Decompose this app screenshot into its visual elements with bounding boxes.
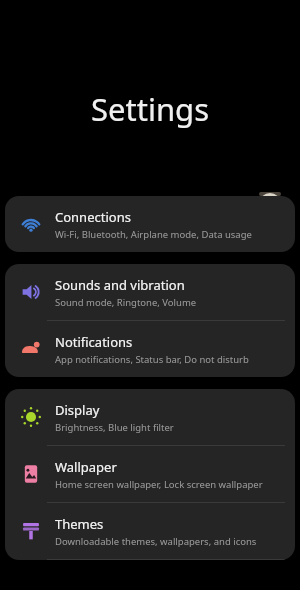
button[interactable]: Notifications bbox=[5, 321, 295, 377]
staticText: Wallpaper bbox=[55, 458, 117, 476]
staticText: Settings bbox=[91, 88, 209, 130]
staticText: Connections bbox=[55, 208, 131, 226]
staticText: Notifications bbox=[55, 333, 133, 351]
button[interactable]: Display bbox=[5, 389, 295, 445]
button[interactable]: Sounds and vibration bbox=[5, 264, 295, 320]
staticText: Display bbox=[55, 401, 100, 419]
button[interactable]: Themes bbox=[5, 503, 295, 559]
staticText: Brightness, Blue light filter bbox=[55, 421, 174, 434]
staticText: Downloadable themes, wallpapers, and ico… bbox=[55, 535, 257, 548]
staticText: Wi-Fi, Bluetooth, Airplane mode, Data us… bbox=[55, 228, 252, 241]
button[interactable]: Connections bbox=[5, 196, 295, 252]
staticText: Sounds and vibration bbox=[55, 276, 185, 294]
staticText: Home screen wallpaper, Lock screen wallp… bbox=[55, 478, 263, 491]
button[interactable]: Profile account bbox=[259, 192, 281, 196]
staticText: App notifications, Status bar, Do not di… bbox=[55, 353, 249, 366]
staticText: Themes bbox=[55, 515, 104, 533]
button[interactable]: Wallpaper bbox=[5, 446, 295, 502]
staticText: Sound mode, Ringtone, Volume bbox=[55, 296, 197, 309]
